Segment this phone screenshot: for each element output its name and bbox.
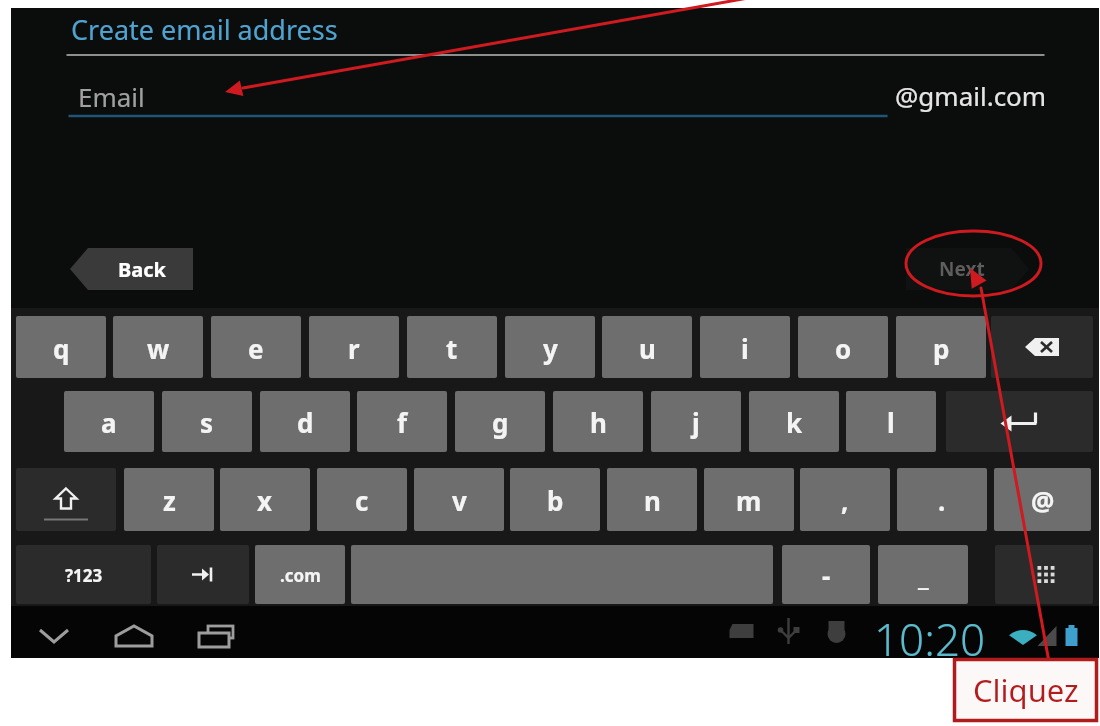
button[interactable]: l	[846, 391, 936, 452]
staticText: Email	[78, 79, 145, 114]
button[interactable]: c	[317, 468, 407, 531]
staticText: Next	[939, 256, 985, 282]
staticText: ?123	[65, 564, 103, 587]
button[interactable]: f	[357, 391, 447, 452]
button[interactable]: .	[897, 468, 987, 531]
staticText: w	[147, 331, 170, 366]
staticText: a	[101, 405, 117, 440]
staticText: k	[786, 405, 803, 440]
button[interactable]: i	[700, 316, 790, 378]
staticText: q	[53, 331, 70, 366]
button[interactable]: t	[407, 316, 497, 378]
staticText: _	[918, 558, 929, 593]
staticText: y	[543, 331, 558, 366]
button[interactable]: d	[260, 391, 350, 452]
staticText: l	[887, 405, 895, 440]
button[interactable]: .com	[255, 545, 345, 604]
staticText: ,	[841, 483, 849, 518]
button[interactable]: u	[602, 316, 692, 378]
button[interactable]: j	[651, 391, 741, 452]
staticText: h	[590, 405, 607, 440]
staticText: i	[741, 331, 749, 366]
staticText: s	[200, 405, 214, 440]
button[interactable]: r	[309, 316, 399, 378]
button[interactable]: ,	[800, 468, 890, 531]
staticText: z	[163, 483, 176, 518]
staticText: p	[933, 331, 950, 366]
button[interactable]: Tab	[157, 545, 249, 604]
button[interactable]: Back	[70, 248, 193, 290]
staticText: n	[644, 483, 661, 518]
staticText: o	[835, 331, 852, 366]
button[interactable]: p	[896, 316, 986, 378]
staticText: d	[297, 405, 314, 440]
staticText: Cliquez	[973, 669, 1079, 711]
button[interactable]: Next	[906, 248, 1029, 290]
button[interactable]: Backspace	[991, 316, 1093, 378]
staticText: j	[692, 405, 700, 440]
staticText: Create email address	[71, 11, 338, 48]
button[interactable]: a	[64, 391, 154, 452]
staticText: @	[1031, 483, 1055, 518]
button[interactable]: Recent apps	[197, 624, 239, 650]
button[interactable]: v	[414, 468, 504, 531]
staticText: .com	[280, 564, 321, 587]
staticText: f	[397, 405, 408, 440]
staticText: Back	[118, 256, 166, 283]
button[interactable]: @	[994, 468, 1091, 531]
staticText: -	[822, 558, 831, 593]
staticText: 10:20	[874, 609, 986, 661]
button[interactable]: Switch keyboard	[995, 545, 1093, 604]
button[interactable]: m	[704, 468, 794, 531]
button[interactable]: y	[505, 316, 595, 378]
staticText: x	[257, 483, 273, 518]
button[interactable]: Home	[114, 624, 158, 650]
staticText: b	[547, 483, 564, 518]
button[interactable]: q	[16, 316, 106, 378]
button[interactable]: Shift	[16, 468, 116, 531]
staticText: u	[639, 331, 656, 366]
button[interactable]: k	[749, 391, 839, 452]
button[interactable]: b	[510, 468, 600, 531]
staticText: @gmail.com	[895, 78, 1047, 113]
button[interactable]: Enter	[946, 391, 1093, 452]
button[interactable]: z	[124, 468, 214, 531]
button[interactable]: x	[220, 468, 310, 531]
button[interactable]: w	[113, 316, 203, 378]
staticText: r	[348, 331, 360, 366]
button[interactable]: ?123	[16, 545, 151, 604]
button[interactable]: h	[553, 391, 643, 452]
button[interactable]: s	[162, 391, 252, 452]
button[interactable]: o	[798, 316, 888, 378]
button[interactable]: Back	[38, 626, 80, 648]
button[interactable]: e	[211, 316, 301, 378]
button[interactable]: n	[607, 468, 697, 531]
button[interactable]: -	[782, 545, 870, 604]
staticText: .	[938, 483, 946, 518]
staticText: m	[736, 483, 762, 518]
staticText: e	[248, 331, 264, 366]
button[interactable]: g	[455, 391, 545, 452]
staticText: c	[355, 483, 369, 518]
button[interactable]: _	[878, 545, 968, 604]
staticText: t	[446, 331, 458, 366]
staticText: v	[452, 483, 467, 518]
staticText: g	[492, 405, 509, 440]
